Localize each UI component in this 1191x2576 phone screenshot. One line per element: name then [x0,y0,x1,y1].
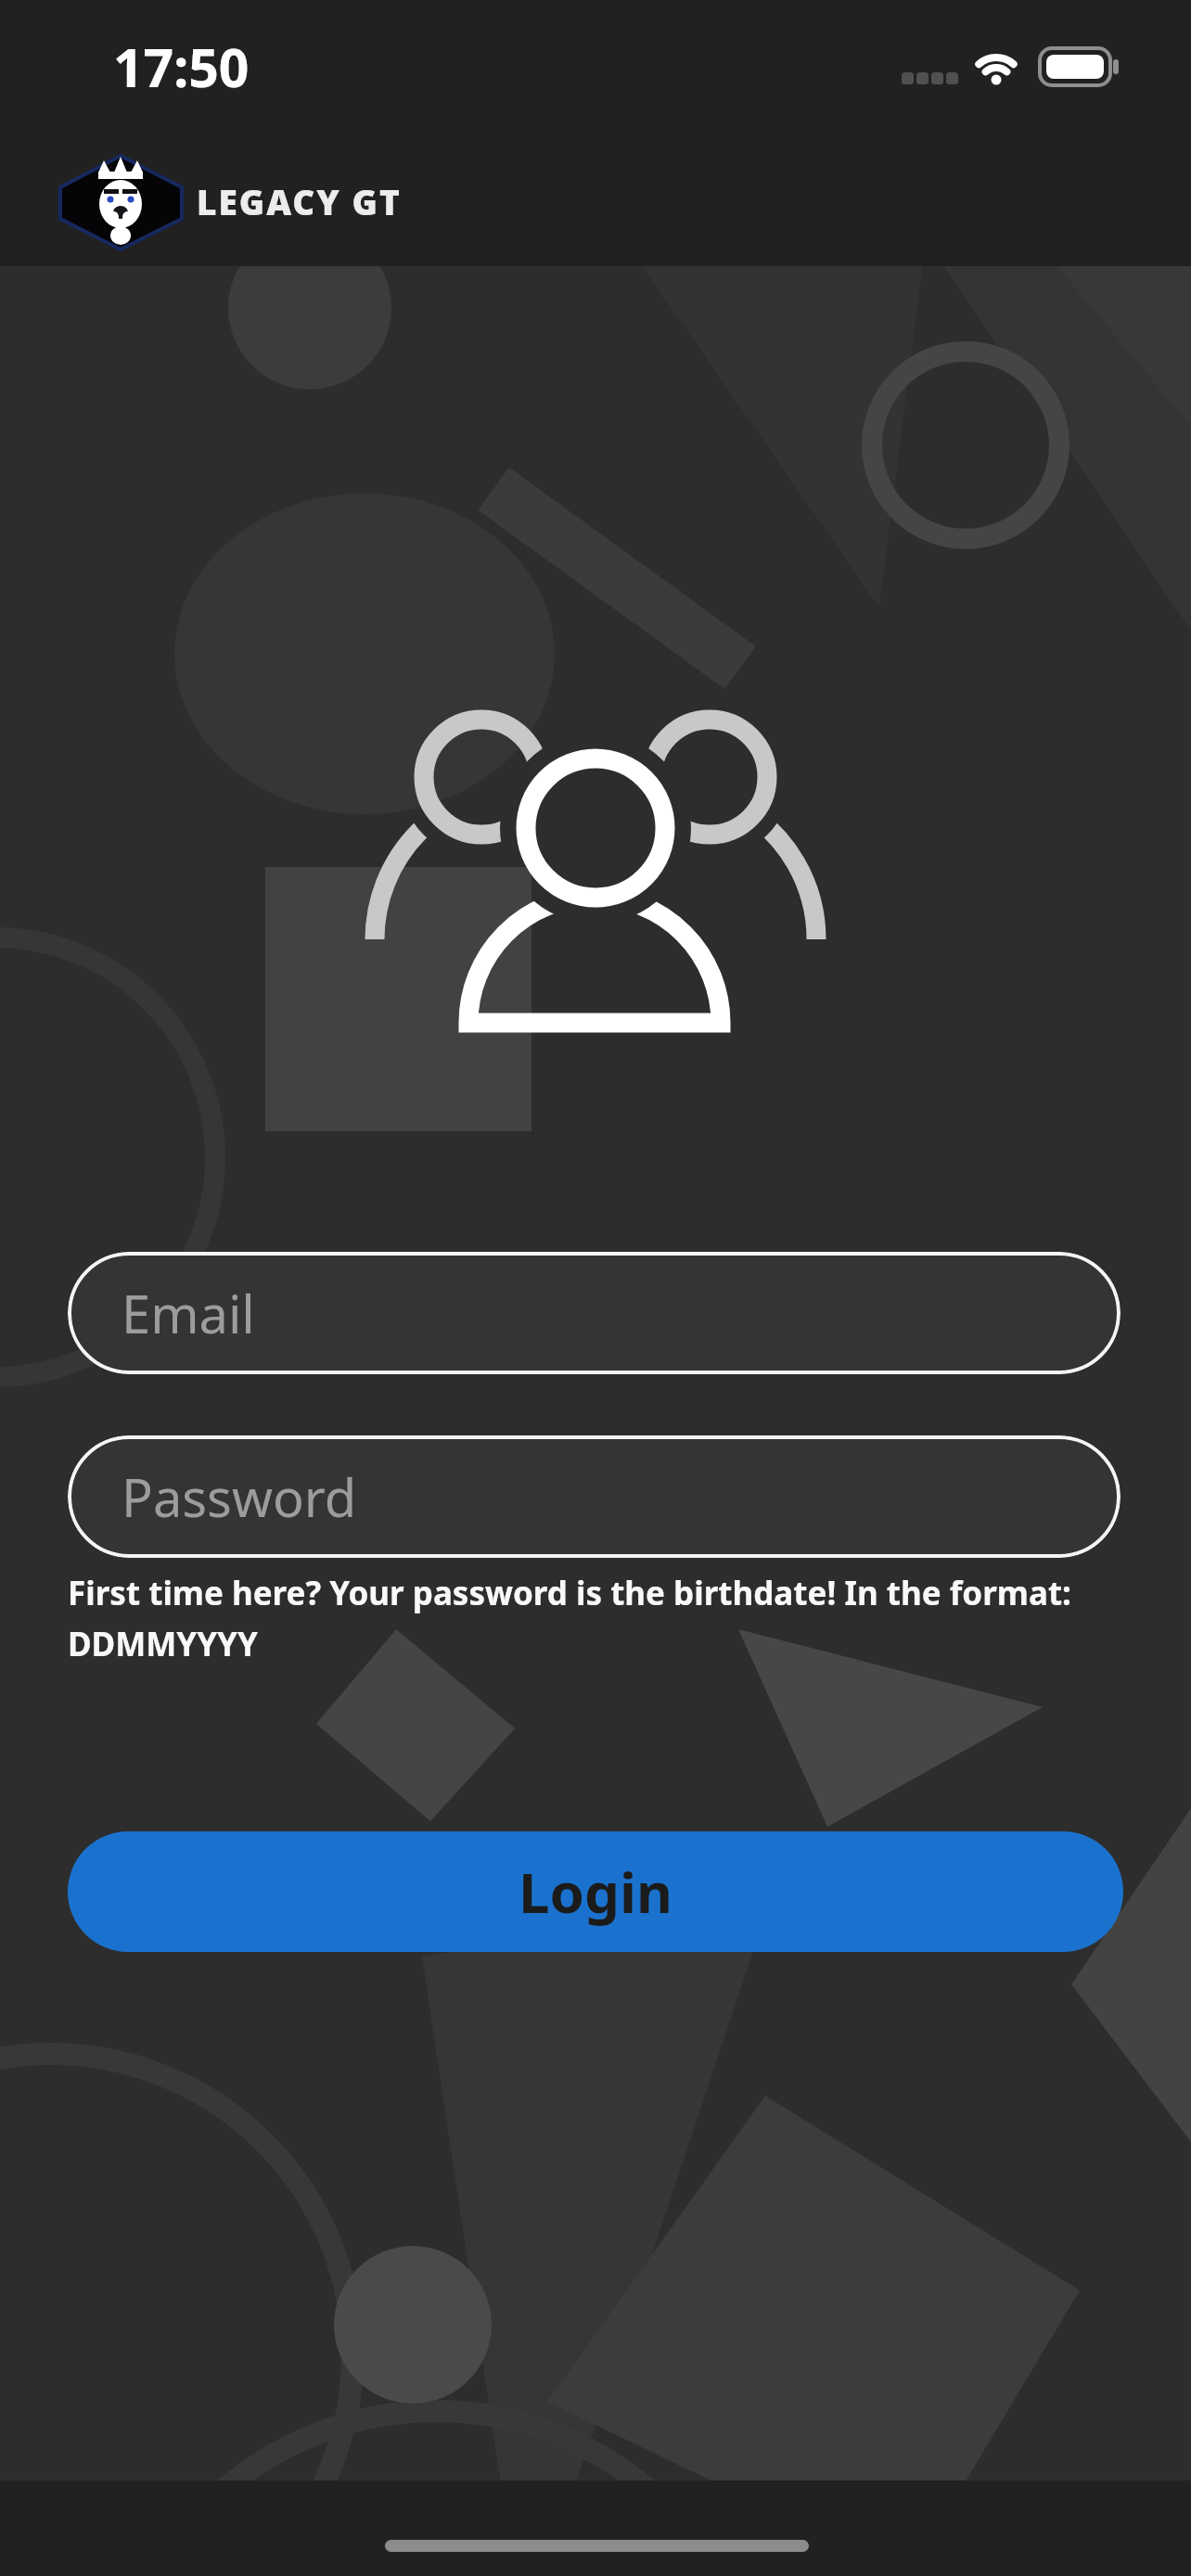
staticText: 17:50 [113,31,250,103]
staticText: LEGACY GT [197,178,402,224]
button[interactable]: Password [68,1435,1121,1558]
staticText: Password [122,1461,357,1532]
staticText: First time here? Your password is the bi… [68,1571,1071,1615]
staticText: Login [519,1854,672,1930]
button[interactable]: Login [68,1831,1123,1952]
staticText: Email [122,1278,255,1348]
staticText: DDMMYYYY [68,1622,258,1666]
button[interactable]: Email [68,1252,1121,1374]
